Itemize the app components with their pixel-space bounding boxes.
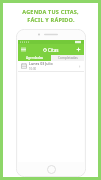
- button[interactable]: Add appointment: [73, 44, 84, 55]
- staticText: Citas: [48, 47, 59, 53]
- staticText: Agendadas: [26, 56, 44, 60]
- staticText: Lunes 03 Julio: [29, 61, 53, 66]
- button[interactable]: Lunes 03 Julio: [18, 61, 84, 71]
- button[interactable]: Completadas: [51, 55, 84, 61]
- staticText: Completadas: [58, 56, 78, 60]
- button[interactable]: Menu: [18, 44, 29, 55]
- staticText: FÁCIL Y RÁPIDO.: [27, 16, 75, 23]
- staticText: 10:00: [29, 67, 37, 71]
- staticText: AGENDA TUS CITAS,: [22, 8, 79, 15]
- button[interactable]: Agendadas: [18, 55, 51, 61]
